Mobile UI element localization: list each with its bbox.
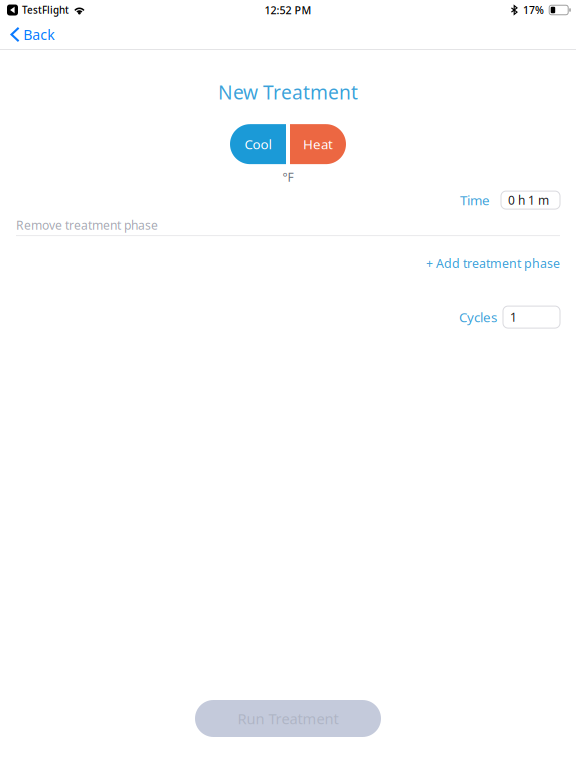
staticText: 0 h 1 m	[508, 192, 549, 208]
staticText: °F	[282, 169, 293, 185]
button[interactable]: Cool	[230, 124, 286, 164]
staticText: Cool	[244, 135, 271, 153]
staticText: Remove treatment phase	[16, 217, 158, 233]
staticText: 1	[510, 309, 517, 325]
staticText: Time	[460, 191, 490, 209]
staticText: New Treatment	[218, 79, 358, 105]
staticText: 17%	[523, 3, 544, 17]
button[interactable]: Cycles, 1	[503, 306, 560, 328]
button[interactable]: Remove treatment phase	[16, 215, 158, 235]
staticText: Run Treatment	[237, 709, 338, 728]
staticText: 12:52 PM	[264, 3, 311, 17]
button[interactable]: Run Treatment	[195, 700, 381, 737]
staticText: + Add treatment phase	[426, 255, 560, 271]
staticText: Cycles	[459, 308, 497, 326]
staticText: TestFlight	[22, 3, 69, 17]
button[interactable]: + Add treatment phase	[426, 253, 560, 273]
button[interactable]: Heat	[290, 124, 346, 164]
button[interactable]: Back	[0, 20, 67, 49]
button[interactable]: Time, 0 hours 1 minute	[501, 191, 560, 209]
staticText: Back	[23, 25, 55, 44]
staticText: Heat	[303, 135, 333, 153]
